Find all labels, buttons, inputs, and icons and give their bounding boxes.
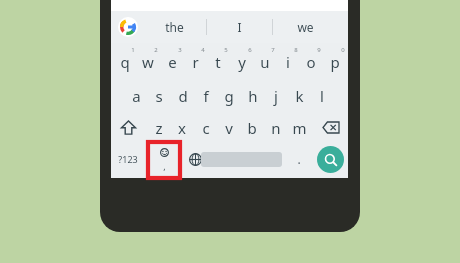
staticText: u: [260, 52, 270, 72]
staticText: z: [155, 118, 163, 138]
staticText: s: [155, 86, 163, 106]
staticText: 4: [201, 46, 205, 54]
button[interactable]: Google: [118, 17, 138, 37]
staticText: 6: [248, 46, 252, 54]
staticText: h: [248, 86, 258, 106]
staticText: v: [225, 118, 233, 138]
button[interactable]: h: [242, 84, 264, 108]
staticText: we: [297, 19, 314, 35]
staticText: x: [178, 118, 186, 138]
staticText: w: [142, 52, 154, 72]
staticText: o: [306, 52, 316, 72]
staticText: t: [215, 52, 221, 72]
button[interactable]: o: [300, 50, 322, 74]
button[interactable]: a: [125, 84, 147, 108]
button[interactable]: b: [241, 116, 263, 140]
staticText: f: [203, 86, 209, 106]
button[interactable]: v: [218, 116, 240, 140]
button[interactable]: Shift: [115, 114, 141, 140]
staticText: I: [237, 19, 242, 35]
staticText: b: [247, 118, 257, 138]
button[interactable]: ?123: [113, 146, 143, 172]
staticText: ?123: [118, 153, 138, 165]
staticText: ,: [163, 160, 166, 172]
staticText: e: [168, 52, 177, 72]
staticText: r: [192, 52, 199, 72]
staticText: c: [202, 118, 210, 138]
button[interactable]: t: [207, 50, 229, 74]
staticText: the: [165, 19, 184, 35]
staticText: 3: [178, 46, 182, 54]
button[interactable]: Search: [317, 146, 344, 173]
button[interactable]: d: [172, 84, 194, 108]
button[interactable]: g: [218, 84, 240, 108]
button[interactable]: Change language: [182, 146, 208, 172]
staticText: 8: [294, 46, 298, 54]
button[interactable]: m: [288, 116, 310, 140]
button[interactable]: p: [324, 50, 346, 74]
button[interactable]: z: [148, 116, 170, 140]
staticText: a: [132, 86, 141, 106]
button[interactable]: c: [195, 116, 217, 140]
button[interactable]: w: [137, 50, 159, 74]
button[interactable]: l: [311, 84, 333, 108]
staticText: q: [120, 52, 130, 72]
button[interactable]: the: [143, 11, 205, 43]
staticText: k: [295, 86, 304, 106]
button[interactable]: u: [254, 50, 276, 74]
staticText: 9: [317, 46, 321, 54]
button[interactable]: r: [184, 50, 206, 74]
staticText: 5: [224, 46, 228, 54]
staticText: 0: [341, 46, 345, 54]
button[interactable]: j: [265, 84, 287, 108]
staticText: n: [271, 118, 281, 138]
button[interactable]: .: [288, 146, 310, 172]
button[interactable]: we: [273, 11, 337, 43]
button[interactable]: I: [207, 11, 271, 43]
button[interactable]: k: [288, 84, 310, 108]
staticText: 2: [154, 46, 158, 54]
button[interactable]: Emoji and comma key: [149, 143, 179, 176]
button[interactable]: e: [161, 50, 183, 74]
staticText: y: [238, 52, 246, 72]
button[interactable]: s: [148, 84, 170, 108]
button[interactable]: i: [277, 50, 299, 74]
button[interactable]: x: [171, 116, 193, 140]
staticText: p: [330, 52, 340, 72]
staticText: 1: [131, 46, 135, 54]
button[interactable]: y: [231, 50, 253, 74]
button[interactable]: f: [195, 84, 217, 108]
button[interactable]: q: [114, 50, 136, 74]
staticText: 7: [271, 46, 275, 54]
staticText: l: [320, 86, 324, 106]
staticText: d: [178, 86, 188, 106]
staticText: j: [274, 86, 278, 106]
button[interactable]: n: [265, 116, 287, 140]
button[interactable]: Backspace: [318, 114, 344, 140]
staticText: i: [286, 52, 290, 72]
staticText: m: [292, 118, 307, 138]
staticText: g: [224, 86, 234, 106]
staticText: .: [297, 151, 301, 167]
